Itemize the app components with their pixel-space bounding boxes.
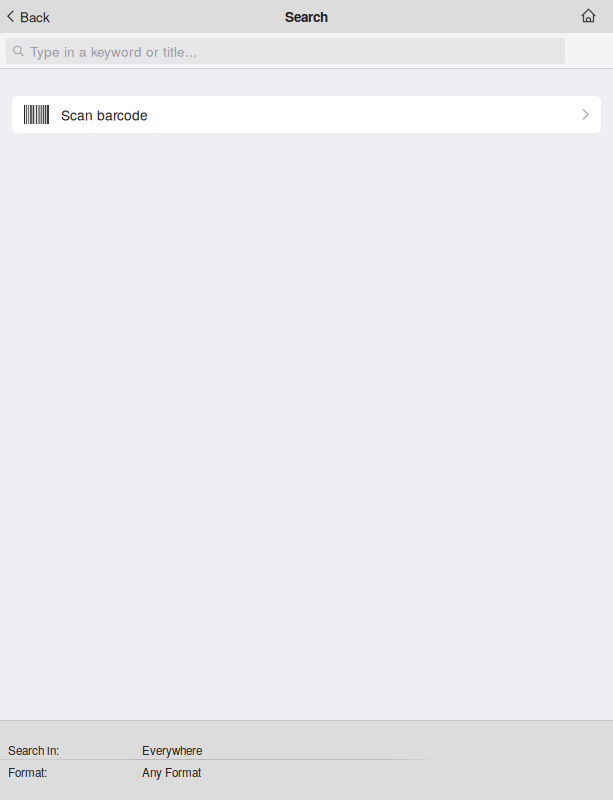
button[interactable]: Back [0, 0, 62, 33]
button[interactable]: Type in a keyword or title... [6, 38, 565, 64]
staticText: Back [20, 7, 50, 26]
button[interactable]: Scan barcode [12, 96, 601, 133]
staticText: Any Format [142, 764, 201, 780]
button[interactable]: Home [567, 0, 613, 33]
staticText: Everywhere [142, 742, 202, 758]
staticText: Format: [8, 764, 47, 780]
button[interactable]: Search in: [0, 741, 613, 759]
staticText: Scan barcode [61, 105, 148, 124]
staticText: Search [285, 7, 328, 26]
button[interactable]: Format: [0, 763, 613, 781]
staticText: Search in: [8, 742, 59, 758]
staticText: Type in a keyword or title... [30, 41, 197, 61]
